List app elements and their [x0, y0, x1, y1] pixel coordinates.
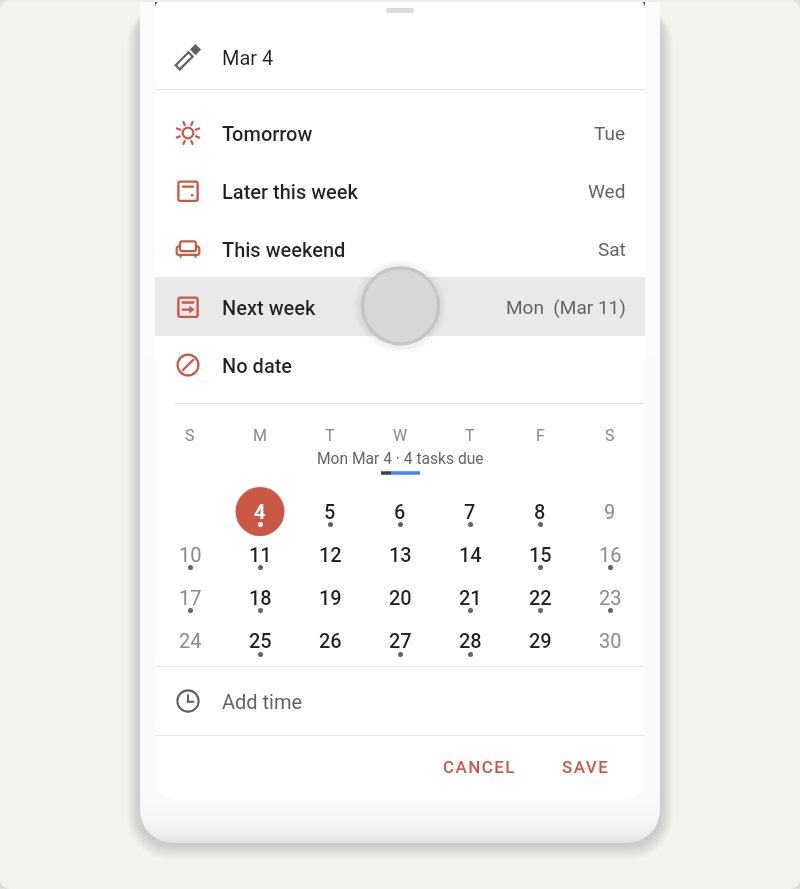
button[interactable]: [378, 489, 422, 533]
staticText: Sat: [598, 238, 626, 260]
staticText: 6: [394, 500, 406, 523]
staticText: Later this week: [222, 180, 359, 203]
staticText: No date: [222, 354, 293, 377]
button[interactable]: CANCEL: [433, 744, 525, 790]
staticText: 15: [529, 543, 552, 566]
staticText: Mon Mar 4 · 4 tasks due: [317, 450, 484, 468]
staticText: 11: [249, 543, 272, 566]
button[interactable]: [378, 575, 422, 619]
staticText: 19: [319, 586, 342, 609]
button[interactable]: [448, 532, 492, 576]
button[interactable]: [155, 104, 645, 162]
button[interactable]: [308, 489, 352, 533]
staticText: T: [325, 426, 335, 445]
button[interactable]: [155, 336, 645, 394]
staticText: 18: [249, 586, 272, 609]
staticText: 9: [604, 500, 616, 523]
button[interactable]: [518, 532, 562, 576]
button[interactable]: [588, 618, 632, 662]
staticText: Tue: [594, 122, 626, 144]
button[interactable]: [238, 575, 282, 619]
button[interactable]: [378, 618, 422, 662]
staticText: 29: [529, 629, 552, 652]
staticText: W: [393, 426, 408, 445]
staticText: T: [465, 426, 475, 445]
staticText: Tomorrow: [222, 122, 313, 145]
button[interactable]: [588, 532, 632, 576]
staticText: 14: [459, 543, 482, 566]
staticText: 10: [179, 543, 202, 566]
button[interactable]: [155, 220, 645, 278]
staticText: 4: [254, 500, 266, 523]
staticText: Add time: [222, 690, 303, 713]
staticText: M: [253, 426, 267, 445]
staticText: 30: [599, 629, 622, 652]
button[interactable]: [168, 575, 212, 619]
staticText: 7: [464, 500, 476, 523]
button[interactable]: [448, 575, 492, 619]
button[interactable]: [588, 489, 632, 533]
button[interactable]: [155, 25, 645, 89]
staticText: CANCEL: [443, 757, 516, 777]
button[interactable]: [518, 489, 562, 533]
staticText: 23: [599, 586, 622, 609]
button[interactable]: [308, 618, 352, 662]
staticText: Mon (Mar 11): [506, 296, 626, 318]
staticText: This weekend: [222, 238, 346, 261]
staticText: 24: [179, 629, 202, 652]
staticText: Wed: [588, 180, 626, 202]
staticText: 13: [389, 543, 412, 566]
button[interactable]: [308, 575, 352, 619]
button[interactable]: [155, 278, 645, 336]
staticText: 26: [319, 629, 342, 652]
staticText: Mar 4: [222, 46, 274, 69]
button[interactable]: [448, 618, 492, 662]
button[interactable]: [168, 618, 212, 662]
staticText: SAVE: [562, 757, 610, 777]
staticText: F: [536, 426, 545, 445]
button[interactable]: SAVE: [553, 744, 619, 790]
staticText: 8: [534, 500, 546, 523]
staticText: 20: [389, 586, 412, 609]
staticText: 5: [324, 500, 336, 523]
staticText: 21: [459, 586, 482, 609]
button[interactable]: [238, 489, 282, 533]
staticText: S: [605, 426, 615, 445]
staticText: 27: [389, 629, 412, 652]
staticText: 22: [529, 586, 552, 609]
button[interactable]: [238, 618, 282, 662]
staticText: S: [185, 426, 195, 445]
button[interactable]: [168, 532, 212, 576]
staticText: Next week: [222, 296, 316, 319]
button[interactable]: [155, 667, 645, 735]
button[interactable]: [588, 575, 632, 619]
button[interactable]: [155, 162, 645, 220]
staticText: 28: [459, 629, 482, 652]
button[interactable]: [308, 532, 352, 576]
staticText: 25: [249, 629, 272, 652]
button[interactable]: [448, 489, 492, 533]
button[interactable]: [238, 532, 282, 576]
button[interactable]: [518, 575, 562, 619]
staticText: 16: [599, 543, 622, 566]
staticText: 17: [179, 586, 202, 609]
button[interactable]: [378, 532, 422, 576]
staticText: 12: [319, 543, 342, 566]
button[interactable]: [518, 618, 562, 662]
